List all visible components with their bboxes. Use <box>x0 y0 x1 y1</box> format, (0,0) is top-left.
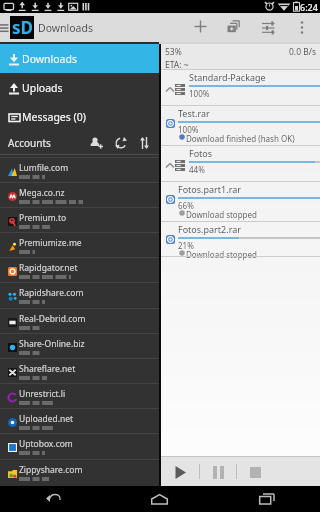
button[interactable]: Stop downloads <box>245 462 265 482</box>
staticText: Uploaded.net <box>19 413 74 425</box>
button[interactable]: Premium.to <box>0 207 159 232</box>
button[interactable]: Rapidgator.net <box>0 257 159 282</box>
staticText: sD <box>12 16 33 39</box>
staticText: 21% <box>178 240 194 251</box>
staticText: Uptobox.com <box>19 438 73 450</box>
button[interactable]: Add account <box>87 131 106 154</box>
button[interactable]: Zippyshare.com <box>0 459 159 484</box>
button[interactable]: Messages (0) <box>0 102 159 131</box>
button[interactable]: Settings <box>258 13 278 42</box>
staticText: Fotos.part2.rar <box>178 223 241 235</box>
staticText: Fotos <box>189 147 213 159</box>
button[interactable]: Rapidshare.com <box>0 282 159 307</box>
staticText: 100% <box>189 88 210 99</box>
staticText: Fotos.part1.rar <box>178 183 241 195</box>
staticText: Standard-Package <box>189 71 266 83</box>
staticText: Premiumize.me <box>19 237 82 249</box>
button[interactable]: Premiumize.me <box>0 232 159 257</box>
button[interactable]: Pause downloads <box>208 462 228 482</box>
staticText: Rapidshare.com <box>19 287 84 299</box>
button[interactable]: Real-Debrid.com <box>0 308 159 333</box>
staticText: Messages (0) <box>22 110 86 124</box>
staticText: Share-Online.biz <box>19 338 85 350</box>
button[interactable]: Home <box>106 486 213 512</box>
staticText: Download finished (hash OK) <box>186 133 295 144</box>
button[interactable]: Open navigation drawer <box>0 13 10 42</box>
staticText: Download stopped <box>186 249 257 260</box>
button[interactable]: Refresh accounts <box>111 131 130 154</box>
button[interactable]: Uploaded.net <box>0 408 159 433</box>
staticText: 100% <box>178 124 199 135</box>
button[interactable]: Fotos.part2.rar <box>161 221 320 256</box>
button[interactable]: Mega.co.nz <box>0 182 159 207</box>
button[interactable]: Uploads <box>0 73 159 102</box>
staticText: 44% <box>189 164 205 175</box>
button[interactable]: Test.rar <box>161 105 320 145</box>
staticText: Download stopped <box>186 209 257 220</box>
staticText: Downloads <box>22 52 77 66</box>
button[interactable]: More options <box>295 13 309 42</box>
staticText: Downloads <box>38 21 93 35</box>
button[interactable]: Fotos <box>161 145 320 181</box>
button[interactable]: Share-Online.biz <box>0 333 159 358</box>
staticText: Real-Debrid.com <box>19 313 86 325</box>
button[interactable]: Add container <box>223 13 243 42</box>
staticText: Unrestrict.li <box>19 388 66 400</box>
staticText: 66% <box>178 200 194 211</box>
staticText: 6:24 <box>300 1 318 13</box>
button[interactable]: Shareflare.net <box>0 358 159 383</box>
button[interactable]: Lumfile.com <box>0 157 159 182</box>
button[interactable]: Back <box>0 486 106 512</box>
staticText: Accounts <box>8 136 51 150</box>
staticText: Rapidgator.net <box>19 262 78 274</box>
button[interactable]: Add links <box>190 13 210 42</box>
button[interactable]: Fotos.part1.rar <box>161 181 320 221</box>
staticText: Zippyshare.com <box>19 464 83 476</box>
staticText: Mega.co.nz <box>19 187 65 199</box>
staticText: Shareflare.net <box>19 363 76 375</box>
staticText: Uploads <box>22 81 63 95</box>
staticText: 53% <box>165 46 182 58</box>
staticText: ETA: ~ <box>165 59 189 69</box>
button[interactable]: Sort accounts <box>135 131 154 154</box>
button[interactable]: Unrestrict.li <box>0 383 159 408</box>
staticText: Premium.to <box>19 212 67 224</box>
staticText: Test.rar <box>178 107 210 119</box>
button[interactable]: Start downloads <box>171 462 191 482</box>
button[interactable]: Recent apps <box>213 486 320 512</box>
staticText: 0.0 B/s <box>289 46 316 58</box>
button[interactable]: Downloads <box>0 44 159 73</box>
button[interactable]: Standard-Package <box>161 69 320 105</box>
staticText: Lumfile.com <box>19 162 69 174</box>
button[interactable]: Uptobox.com <box>0 433 159 458</box>
